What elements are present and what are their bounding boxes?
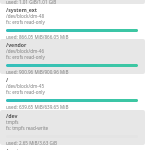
staticText: /system_ext [6,6,38,13]
staticText: tmpfs [6,119,19,125]
button[interactable]: / [0,74,145,109]
staticText: fs: tmpfs read-write [6,125,49,131]
staticText: used: 639.65 MiB/639.65 MiB [6,104,69,109]
staticText: fs: erofs read-only [6,19,45,25]
button[interactable]: /vendor [0,39,145,74]
staticText: /mnt [6,147,19,150]
staticText: used: 2.65 MiB/3.63 GiB [6,140,58,145]
button[interactable]: /mnt [0,145,145,150]
staticText: used: 1.01 GiB/1.01 GiB [6,0,57,4]
staticText: fs: erofs read-only [6,54,45,60]
staticText: /dev/block/dm-46 [6,48,45,54]
staticText: /vendor [6,41,27,48]
staticText: /dev/block/dm-45 [6,83,45,89]
staticText: / [6,76,9,83]
staticText: /dev [6,112,18,119]
button[interactable]: /system_ext [0,4,145,39]
button[interactable]: /product [0,0,145,4]
staticText: used: 866.05 MiB/866.05 MiB [6,34,69,39]
staticText: used: 900.96 MiB/900.96 MiB [6,69,69,74]
staticText: /dev/block/dm-48 [6,13,45,19]
button[interactable]: /dev [0,110,145,145]
staticText: fs: erofs read-only [6,89,45,95]
